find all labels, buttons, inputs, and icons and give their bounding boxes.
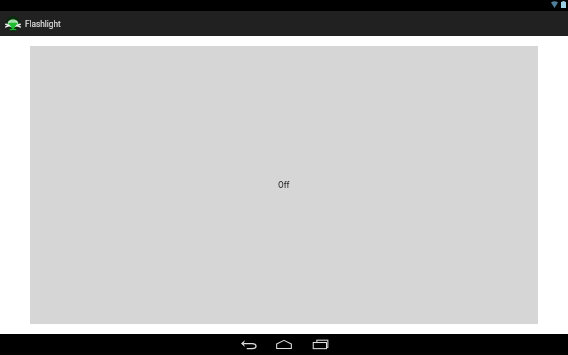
button[interactable]: Flashlight (0, 11, 67, 36)
button[interactable]: Back (230, 334, 266, 355)
staticText: Off (278, 180, 290, 190)
staticText: Flashlight (25, 19, 61, 29)
button[interactable]: Home (266, 334, 302, 355)
button[interactable]: Recent apps (302, 334, 338, 355)
